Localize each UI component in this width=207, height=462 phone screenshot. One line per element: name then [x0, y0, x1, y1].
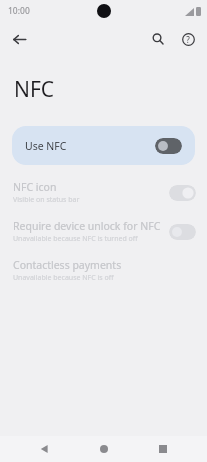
button[interactable]: Use NFC	[12, 126, 195, 165]
button[interactable]: Recent apps	[148, 436, 178, 462]
staticText: Use NFC	[25, 139, 155, 153]
staticText: ?	[186, 34, 190, 45]
staticText: Visible on status bar	[13, 195, 80, 205]
button[interactable]: Toggle	[169, 224, 196, 240]
button[interactable]: Back	[5, 25, 33, 53]
staticText: Unavailable because NFC is off	[13, 273, 114, 283]
button[interactable]: Home	[89, 436, 119, 462]
staticText: Contactless payments	[13, 258, 122, 272]
staticText: Require device unlock for NFC	[13, 219, 161, 233]
button[interactable]: NFC icon	[0, 180, 207, 205]
staticText: 10:00	[8, 5, 30, 17]
button[interactable]: Toggle	[155, 138, 182, 154]
staticText: Unavailable because NFC is turned off	[13, 234, 138, 244]
button[interactable]: Require device unlock for NFC	[0, 219, 207, 244]
staticText: NFC	[14, 75, 55, 104]
staticText: NFC icon	[13, 180, 57, 194]
button[interactable]: Contactless payments	[0, 258, 207, 283]
button[interactable]: Back	[29, 436, 59, 462]
button[interactable]: Help	[175, 26, 201, 52]
button[interactable]: Toggle	[169, 185, 196, 201]
button[interactable]: Search	[145, 26, 171, 52]
